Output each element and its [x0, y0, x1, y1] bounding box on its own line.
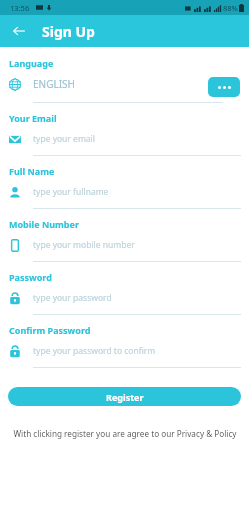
staticText: Password	[9, 271, 52, 283]
button[interactable]: type your email	[8, 126, 241, 152]
staticText: type your password to confirm	[33, 345, 156, 357]
staticText: Confirm Password	[9, 324, 91, 336]
staticText: type your email	[33, 133, 95, 145]
staticText: 88%	[223, 3, 238, 13]
button[interactable]: ENGLISH	[8, 71, 241, 97]
button[interactable]: type your fullname	[8, 179, 241, 205]
staticText: Language	[9, 57, 54, 69]
button[interactable]: type your password to confirm	[8, 338, 241, 364]
staticText: Full Name	[9, 165, 55, 177]
staticText: type your fullname	[33, 186, 109, 198]
button[interactable]: Back	[8, 20, 30, 42]
staticText: type your mobile number	[33, 239, 135, 251]
staticText: Mobile Number	[9, 218, 79, 230]
staticText: With clicking register you are agree to …	[13, 428, 237, 439]
button[interactable]: Register	[8, 387, 241, 406]
staticText: 13:56	[10, 3, 30, 13]
button[interactable]: More language options	[208, 77, 240, 97]
staticText: ENGLISH	[33, 77, 75, 91]
staticText: Sign Up	[42, 22, 95, 41]
staticText: type your password	[33, 292, 112, 304]
staticText: Register	[106, 391, 144, 403]
button[interactable]: type your password	[8, 285, 241, 311]
staticText: Your Email	[9, 112, 57, 124]
button[interactable]: type your mobile number	[8, 232, 241, 258]
